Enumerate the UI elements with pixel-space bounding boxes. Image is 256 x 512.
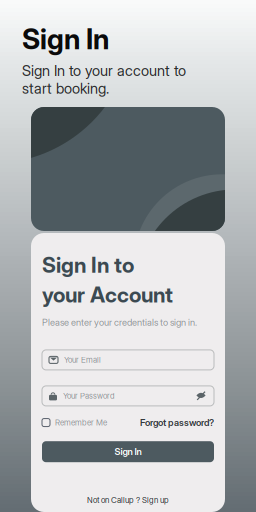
staticText: Sign In to xyxy=(42,252,134,278)
staticText: Your Password xyxy=(63,391,115,401)
staticText: Not on Callup ? Sign up xyxy=(87,495,169,505)
staticText: Sign In xyxy=(114,446,141,457)
staticText: Remember Me xyxy=(55,418,107,427)
staticText: Please enter your credentials to sign in… xyxy=(42,317,197,328)
staticText: your Account xyxy=(42,282,173,308)
staticText: Your Email xyxy=(64,355,101,365)
staticText: Sign In to your account to start booking… xyxy=(22,62,186,97)
staticText: Sign In xyxy=(22,22,109,56)
staticText: Forgot password? xyxy=(140,417,214,428)
button[interactable]: Sign In xyxy=(42,441,214,462)
